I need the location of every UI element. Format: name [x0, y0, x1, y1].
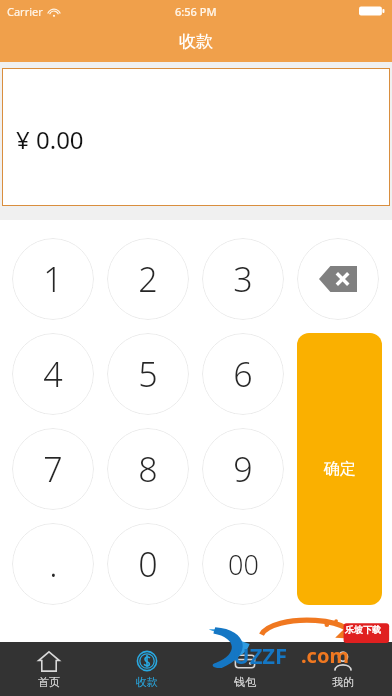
button[interactable]: .	[12, 523, 94, 605]
button[interactable]: 2	[107, 238, 189, 320]
button[interactable]: 3	[202, 238, 284, 320]
staticText: 0	[138, 541, 158, 587]
staticText: 6:56 PM	[175, 4, 217, 19]
button[interactable]: Backspace	[297, 238, 379, 320]
staticText: .com	[301, 642, 349, 669]
staticText: 收款	[179, 31, 213, 52]
staticText: 我的	[332, 675, 354, 689]
staticText: 4	[43, 351, 63, 397]
button[interactable]: 5	[107, 333, 189, 415]
button[interactable]: 8	[107, 428, 189, 510]
button[interactable]: 首页	[0, 642, 98, 696]
button[interactable]: 确定	[297, 333, 382, 605]
button[interactable]: 钱包	[196, 642, 294, 696]
staticText: 8	[138, 446, 158, 492]
staticText: 钱包	[234, 675, 256, 689]
staticText: 3	[233, 256, 253, 302]
staticText: Carrier	[7, 4, 43, 19]
staticText: ¥ 0.00	[16, 123, 84, 156]
staticText: 确定	[324, 459, 356, 479]
staticText: 9	[233, 446, 253, 492]
button[interactable]: 4	[12, 333, 94, 415]
staticText: 7	[43, 446, 63, 492]
staticText: 乐坡下载	[345, 624, 381, 635]
staticText: .	[49, 541, 58, 587]
staticText: UZZF	[233, 640, 288, 670]
staticText: 5	[138, 351, 158, 397]
button[interactable]: 0	[107, 523, 189, 605]
staticText: 2	[138, 256, 158, 302]
button[interactable]: 收款	[98, 642, 196, 696]
staticText: 首页	[38, 675, 60, 689]
button[interactable]: 6	[202, 333, 284, 415]
staticText: 1	[43, 256, 63, 302]
staticText: 00	[228, 546, 259, 583]
button[interactable]: 9	[202, 428, 284, 510]
button[interactable]: 00	[202, 523, 284, 605]
button[interactable]: 1	[12, 238, 94, 320]
button[interactable]: 我的	[294, 642, 392, 696]
staticText: 6	[233, 351, 253, 397]
staticText: 收款	[136, 675, 158, 689]
button[interactable]: 7	[12, 428, 94, 510]
